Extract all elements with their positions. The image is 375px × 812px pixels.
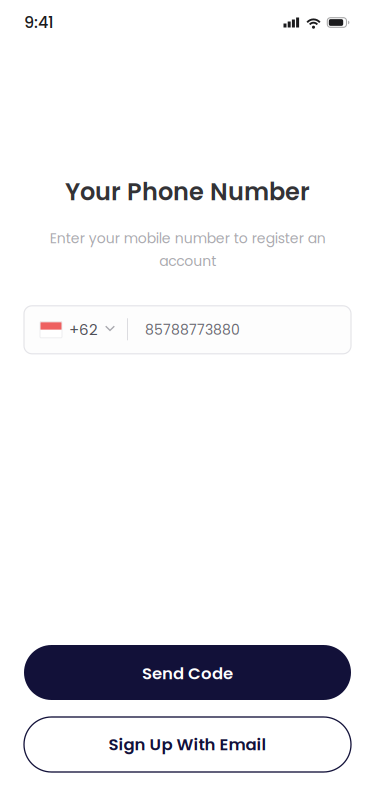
staticText: Send Code	[142, 662, 233, 685]
button[interactable]: +62	[24, 306, 127, 354]
staticText: 85788773880	[145, 320, 240, 340]
staticText: Sign Up With Email	[108, 733, 266, 756]
staticText: Enter your mobile number to register an …	[49, 229, 325, 271]
button[interactable]: Sign Up With Email	[24, 717, 351, 772]
button[interactable]: Send Code	[24, 645, 351, 700]
staticText: Your Phone Number	[65, 175, 310, 209]
staticText: +62	[69, 319, 98, 340]
staticText: 9:41	[24, 11, 54, 34]
